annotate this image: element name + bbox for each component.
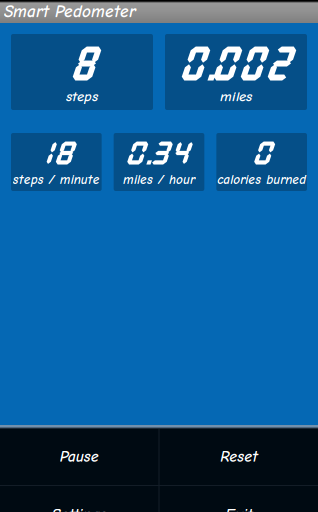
staticText: calories burned — [217, 172, 306, 187]
staticText: Exit — [225, 505, 252, 512]
staticText: Smart Pedometer — [4, 1, 136, 21]
staticText: Settings — [52, 505, 107, 512]
button[interactable]: Pause — [0, 428, 158, 485]
staticText: steps / minute — [13, 172, 100, 187]
staticText: Reset — [220, 447, 257, 466]
staticText: miles — [220, 88, 252, 105]
button[interactable]: Reset — [159, 428, 318, 485]
staticText: steps — [66, 88, 98, 105]
button[interactable]: Settings — [0, 486, 158, 512]
staticText: miles / hour — [123, 172, 195, 187]
button[interactable]: Exit — [159, 486, 318, 512]
staticText: Pause — [60, 447, 99, 466]
